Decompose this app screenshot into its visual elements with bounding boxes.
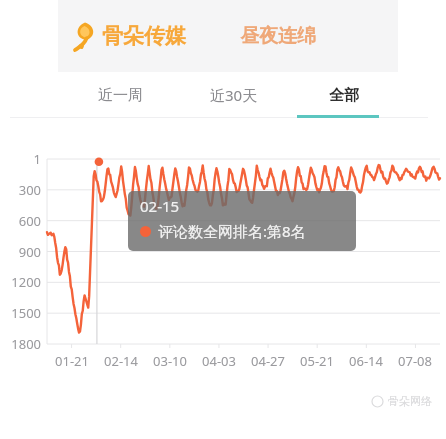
staticText: 06-14 — [349, 352, 383, 370]
staticText: 03-10 — [153, 352, 187, 370]
staticText: 04-03 — [202, 352, 236, 370]
staticText: 01-21 — [55, 352, 89, 370]
other: 骨朵传媒 logo — [72, 21, 97, 51]
staticText: 02-15 — [140, 196, 180, 216]
staticText: 骨朵网络 — [388, 394, 432, 408]
staticText: 04-27 — [251, 352, 285, 370]
staticText: 300 — [18, 181, 41, 199]
staticText: 近30天 — [210, 85, 258, 105]
staticText: 05-21 — [300, 352, 334, 370]
staticText: 骨朵传媒 — [102, 23, 186, 49]
staticText: 600 — [18, 212, 41, 230]
staticText: 全部 — [329, 86, 359, 105]
staticText: 1800 — [11, 335, 41, 353]
staticText: 1200 — [11, 273, 41, 291]
staticText: 昼夜连绵 — [240, 24, 316, 48]
button[interactable]: 全部 — [290, 72, 398, 118]
staticText: 07-08 — [398, 352, 432, 370]
button[interactable]: 02-15 — [128, 191, 356, 251]
button[interactable]: 近30天 — [178, 72, 290, 118]
staticText: 近一周 — [98, 86, 143, 105]
staticText: 1 — [33, 150, 41, 168]
staticText: 评论数全网排名:第8名 — [158, 221, 306, 241]
staticText: 02-14 — [104, 352, 138, 370]
button[interactable]: 近一周 — [62, 72, 178, 118]
staticText: 900 — [18, 243, 41, 261]
staticText: 1500 — [11, 304, 41, 322]
